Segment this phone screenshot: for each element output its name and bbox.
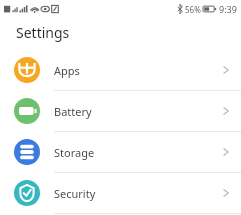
staticText: Settings — [16, 23, 70, 42]
other: Open Security — [221, 186, 231, 200]
staticText: Apps — [54, 63, 221, 78]
staticText: Battery — [54, 104, 221, 119]
button[interactable]: Battery — [0, 91, 241, 131]
other: Open Storage — [221, 145, 231, 159]
other: Open Apps — [221, 63, 231, 77]
staticText: Security — [54, 186, 221, 201]
staticText: Storage — [54, 145, 221, 160]
button[interactable]: Apps — [0, 50, 241, 90]
button[interactable]: Storage — [0, 132, 241, 172]
other: Open Battery — [221, 104, 231, 118]
staticText: 9:39 — [219, 3, 237, 15]
staticText: 56% — [185, 4, 201, 15]
button[interactable]: Security — [0, 173, 241, 213]
